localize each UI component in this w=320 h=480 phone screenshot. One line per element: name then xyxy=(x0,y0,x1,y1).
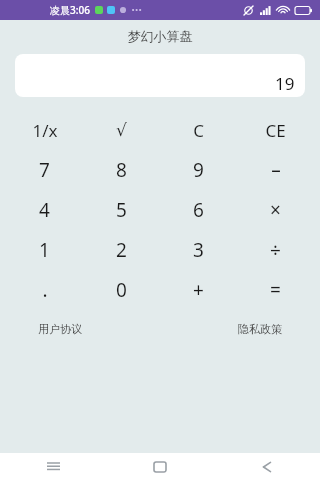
staticText: 5 xyxy=(116,197,127,223)
button[interactable]: 2 xyxy=(83,230,160,270)
staticText: ÷ xyxy=(270,237,281,263)
staticText: √ xyxy=(116,120,127,140)
button[interactable]: Back xyxy=(213,453,320,480)
staticText: 隐私政策 xyxy=(238,322,282,336)
staticText: 7 xyxy=(39,157,50,183)
button[interactable]: CE xyxy=(237,110,314,150)
button[interactable]: 0 xyxy=(83,270,160,310)
button[interactable]: √ xyxy=(83,110,160,150)
staticText: × xyxy=(270,197,281,223)
staticText: 1/x xyxy=(32,119,58,142)
button[interactable]: ÷ xyxy=(237,230,314,270)
staticText: – xyxy=(271,157,281,183)
staticText: 19 xyxy=(275,72,295,95)
staticText: CE xyxy=(265,119,286,142)
button[interactable]: = xyxy=(237,270,314,310)
staticText: 1 xyxy=(39,237,50,263)
staticText: C xyxy=(193,119,204,142)
button[interactable]: 7 xyxy=(6,150,83,190)
button[interactable]: 隐私政策 xyxy=(234,318,286,340)
button[interactable]: 用户协议 xyxy=(34,318,86,340)
staticText: . xyxy=(42,277,48,303)
button[interactable]: . xyxy=(6,270,83,310)
button[interactable]: 3 xyxy=(160,230,237,270)
button[interactable]: Recent apps xyxy=(0,453,106,480)
button[interactable]: 19 xyxy=(15,54,305,97)
staticText: 凌晨3:06 xyxy=(50,3,90,17)
staticText: 2 xyxy=(116,237,127,263)
staticText: 3 xyxy=(193,237,204,263)
button[interactable]: C xyxy=(160,110,237,150)
staticText: 4 xyxy=(39,197,50,223)
button[interactable]: 4 xyxy=(6,190,83,230)
staticText: = xyxy=(270,277,281,303)
button[interactable]: + xyxy=(160,270,237,310)
staticText: 9 xyxy=(193,157,204,183)
button[interactable]: Home xyxy=(106,453,213,480)
staticText: + xyxy=(193,277,204,303)
staticText: 0 xyxy=(116,277,127,303)
staticText: 梦幻小算盘 xyxy=(0,28,320,44)
button[interactable]: 5 xyxy=(83,190,160,230)
button[interactable]: × xyxy=(237,190,314,230)
button[interactable]: 1 xyxy=(6,230,83,270)
staticText: 用户协议 xyxy=(38,322,82,336)
button[interactable]: – xyxy=(237,150,314,190)
button[interactable]: 6 xyxy=(160,190,237,230)
staticText: 8 xyxy=(116,157,127,183)
button[interactable]: 8 xyxy=(83,150,160,190)
staticText: 6 xyxy=(193,197,204,223)
button[interactable]: 9 xyxy=(160,150,237,190)
button[interactable]: 1/x xyxy=(6,110,83,150)
